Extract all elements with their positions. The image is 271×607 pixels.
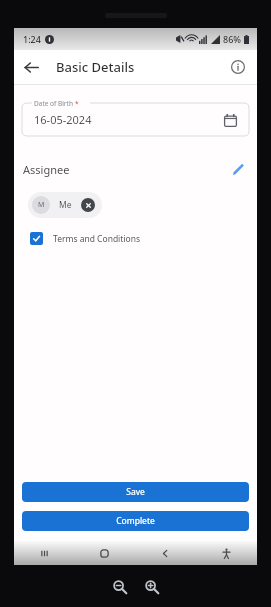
staticText: Complete xyxy=(116,515,155,527)
staticText: Assignee xyxy=(23,162,70,177)
button[interactable]: Zoom in xyxy=(142,577,162,597)
button[interactable]: Recents xyxy=(14,541,74,565)
button[interactable]: Complete xyxy=(22,511,249,531)
button[interactable]: Back xyxy=(14,50,48,84)
button[interactable]: M xyxy=(28,192,102,218)
staticText: Save xyxy=(126,486,145,498)
staticText: 16-05-2024 xyxy=(34,112,92,127)
button[interactable]: Remove Me xyxy=(81,198,95,212)
button[interactable]: Terms and Conditions xyxy=(30,232,141,245)
button[interactable]: Home xyxy=(74,541,135,565)
button[interactable]: Back xyxy=(135,541,196,565)
button[interactable]: Accessibility xyxy=(196,541,257,565)
staticText: 86% xyxy=(223,33,241,45)
staticText: Me xyxy=(59,199,72,211)
button[interactable]: Edit assignee xyxy=(228,159,248,179)
staticText: Terms and Conditions xyxy=(53,233,141,245)
button[interactable]: Pick date xyxy=(221,111,239,129)
staticText: 1:24 xyxy=(23,33,41,45)
staticText: * xyxy=(75,99,79,108)
staticText: Basic Details xyxy=(56,58,135,76)
staticText: M xyxy=(38,200,45,210)
button[interactable]: Info xyxy=(223,50,253,84)
button[interactable]: Zoom out xyxy=(110,577,130,597)
staticText: Date of Birth xyxy=(34,99,75,108)
button[interactable]: Save xyxy=(22,482,249,502)
